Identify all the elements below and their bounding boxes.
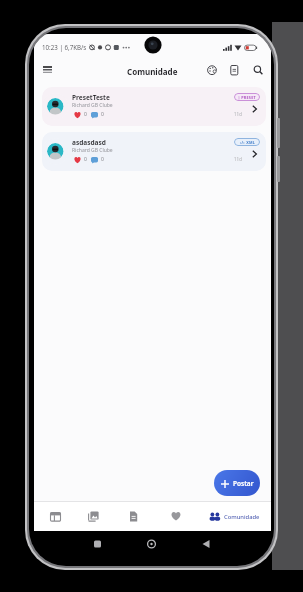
button[interactable]: Postar [214, 470, 260, 496]
button[interactable] [88, 511, 99, 522]
staticText: Comunidade [127, 66, 178, 77]
staticText: asdasdasd [72, 138, 106, 147]
staticText: ‹/› XML [240, 140, 255, 145]
staticText: 0 [101, 111, 104, 118]
staticText: PresetTeste [72, 93, 110, 102]
button[interactable] [50, 512, 61, 522]
button[interactable]: Comunidade [209, 510, 260, 523]
button[interactable]: asdasdasd [42, 132, 266, 171]
staticText: 11d [234, 156, 242, 162]
staticText: 10:23 | 6,7KB/s [42, 43, 87, 51]
staticText: Comunidade [224, 513, 260, 521]
button[interactable]: PresetTeste [42, 87, 266, 126]
staticText: 0 [84, 156, 87, 163]
button[interactable] [129, 511, 138, 522]
staticText: Richard GB Clube [72, 102, 113, 109]
staticText: ◊ PRESET [238, 95, 256, 100]
staticText: 0 [101, 156, 104, 163]
staticText: 11d [234, 111, 242, 117]
button[interactable] [43, 66, 53, 74]
staticText: 0 [84, 111, 87, 118]
staticText: Richard GB Clube [72, 147, 113, 154]
button[interactable] [207, 65, 218, 76]
button[interactable] [230, 65, 239, 76]
staticText: Postar [233, 479, 254, 488]
button[interactable] [171, 512, 181, 521]
button[interactable] [253, 65, 264, 76]
